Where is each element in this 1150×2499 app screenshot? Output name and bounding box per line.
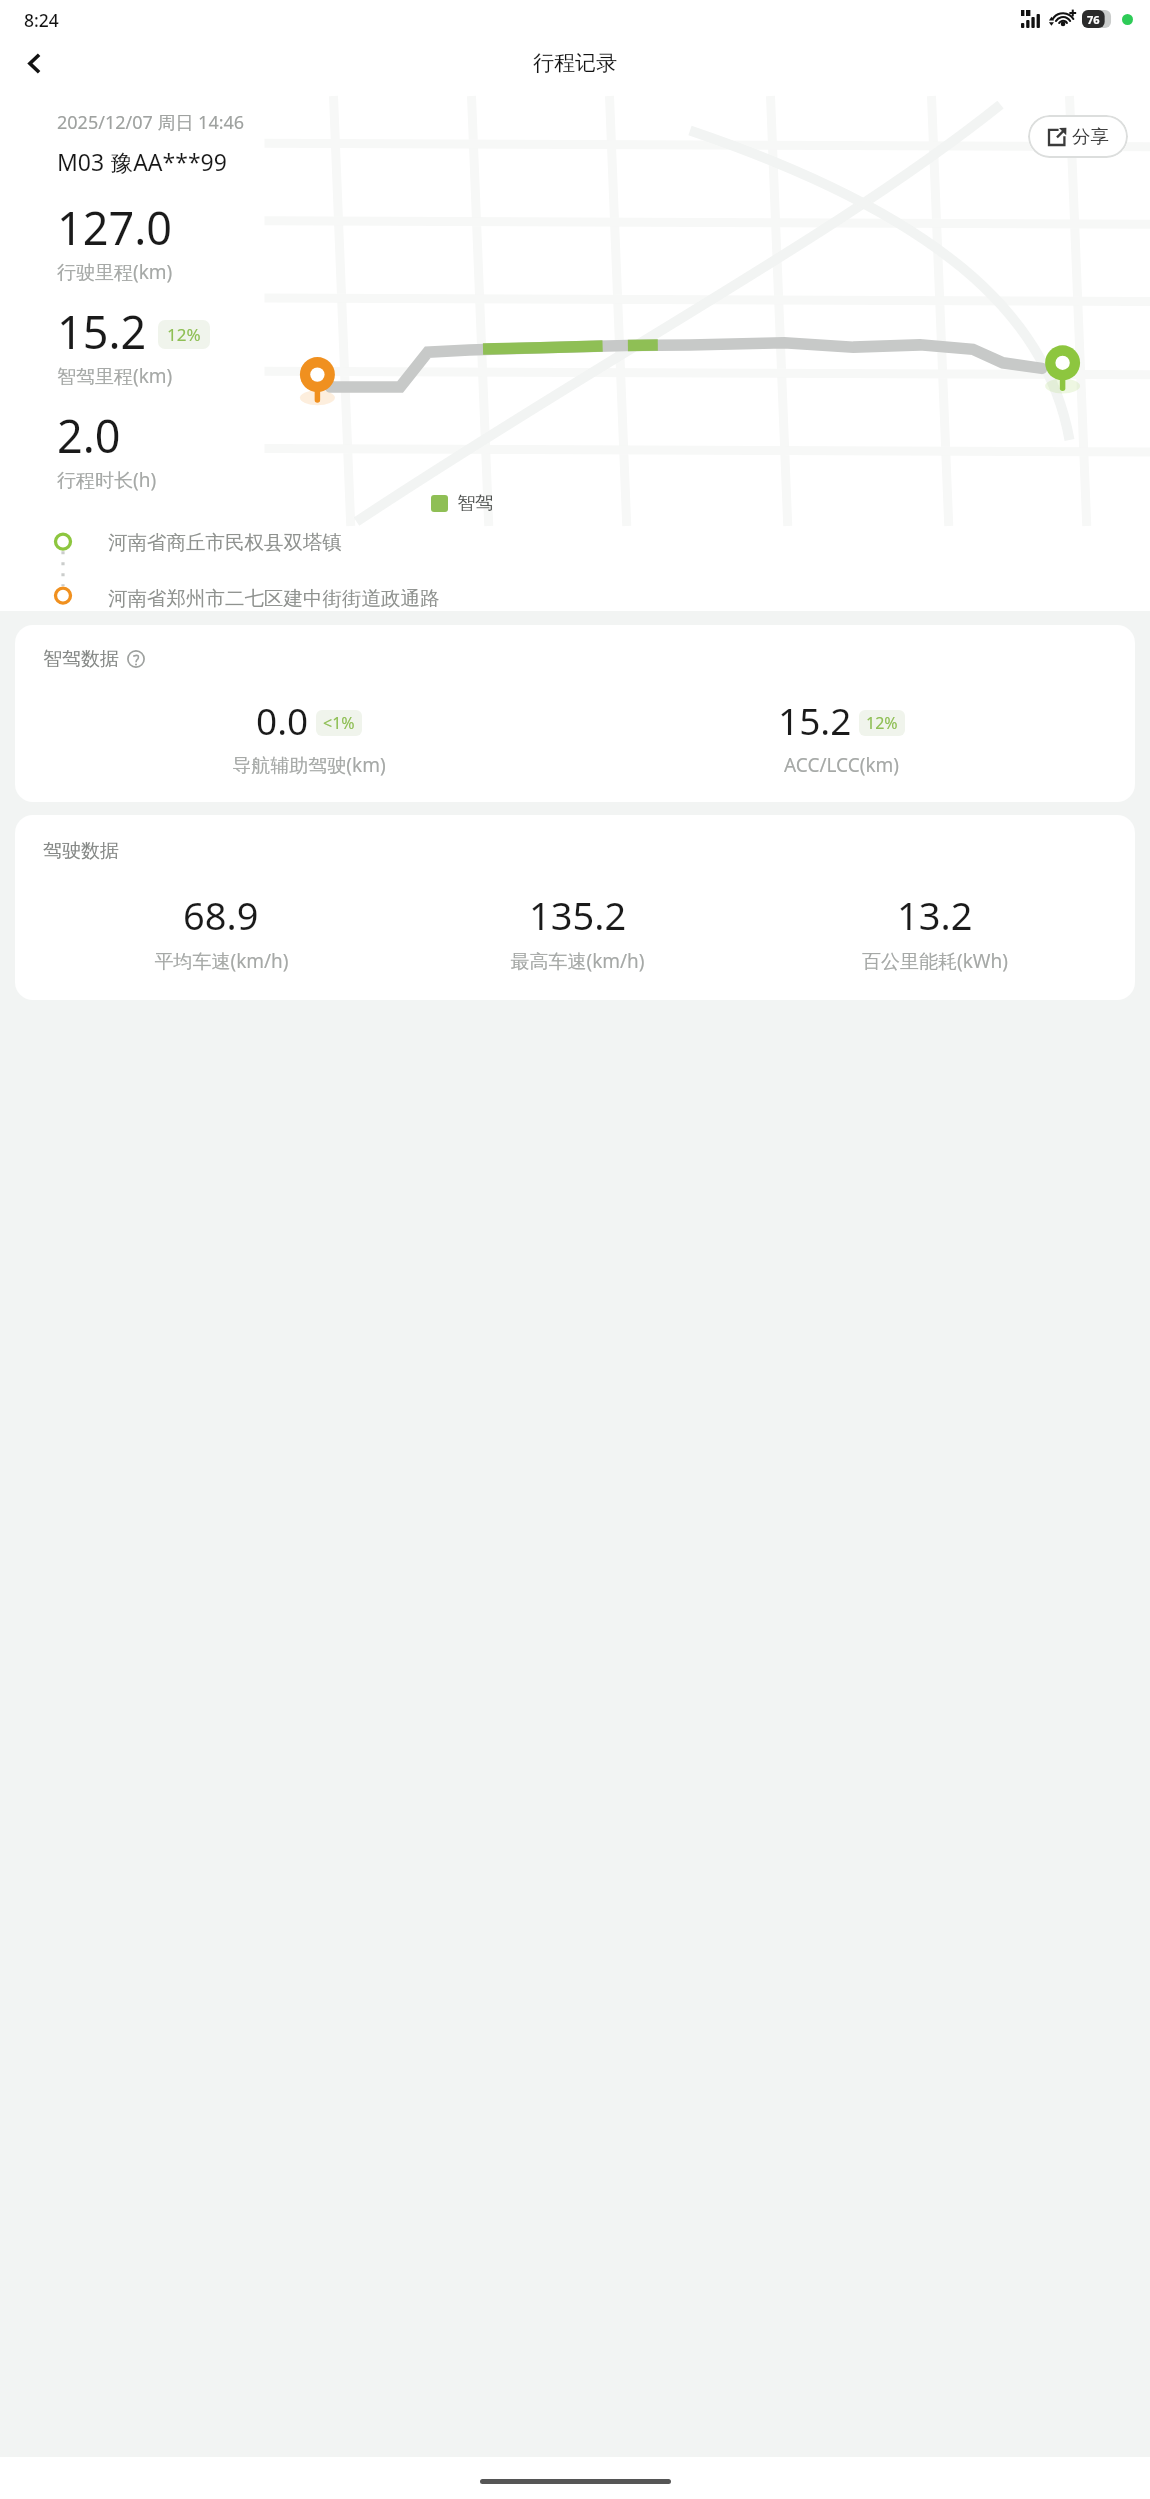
staticText: 12% xyxy=(167,323,201,346)
staticText: 百公里能耗(kWh) xyxy=(862,948,1008,974)
staticText: 行驶里程(km) xyxy=(57,259,173,285)
staticText: 驾驶数据 xyxy=(43,839,119,863)
staticText: 76 xyxy=(1087,12,1100,27)
staticText: 12% xyxy=(866,712,898,734)
staticText: 行程时长(h) xyxy=(57,467,157,493)
staticText: 分享 xyxy=(1072,125,1109,148)
staticText: 河南省商丘市民权县双塔镇 xyxy=(108,530,342,555)
staticText: 智驾里程(km) xyxy=(57,363,173,389)
staticText: 河南省郑州市二七区建中街街道政通路 xyxy=(108,586,440,611)
staticText: M03 豫AA***99 xyxy=(57,146,227,177)
staticText: 导航辅助驾驶(km) xyxy=(232,752,386,778)
staticText: 135.2 xyxy=(529,889,627,941)
button[interactable]: Back xyxy=(8,38,60,88)
staticText: 13.2 xyxy=(897,889,973,941)
staticText: 0.0 xyxy=(256,695,309,745)
staticText: 68.9 xyxy=(183,889,259,941)
button[interactable]: 分享 xyxy=(1028,115,1128,158)
staticText: 2.0 xyxy=(57,405,121,466)
staticText: 15.2 xyxy=(57,301,147,362)
staticText: 127.0 xyxy=(57,197,173,258)
staticText: 8:24 xyxy=(24,8,59,32)
staticText: <1% xyxy=(323,712,355,734)
staticText: ACC/LCC(km) xyxy=(784,752,899,778)
staticText: 2025/12/07 周日 14:46 xyxy=(57,110,245,135)
staticText: 智驾 xyxy=(457,492,493,515)
staticText: 15.2 xyxy=(778,695,852,745)
button[interactable]: About assisted driving data xyxy=(124,647,148,671)
staticText: 智驾数据 xyxy=(43,647,119,671)
staticText: 平均车速(km/h) xyxy=(154,948,289,974)
staticText: 行程记录 xyxy=(533,50,617,76)
staticText: 最高车速(km/h) xyxy=(510,948,645,974)
